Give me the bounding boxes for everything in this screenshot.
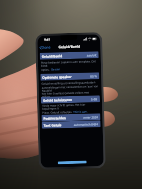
staticText: Pieve bedienen zoeken is een template. D… bbox=[41, 59, 98, 68]
staticText: De tien bbox=[51, 67, 61, 72]
staticText: Podsinstelden bbox=[43, 116, 66, 121]
staticText: aan/uit bbox=[87, 53, 97, 58]
button[interactable]: Geluid/Beeld bbox=[40, 51, 99, 60]
button[interactable]: Geluid beluisteren bbox=[41, 95, 100, 104]
staticText: opties. bbox=[41, 68, 50, 72]
button[interactable]: Podsinstelden bbox=[41, 113, 101, 122]
button[interactable]: Optionele speaker bbox=[40, 72, 99, 81]
staticText: meer 2024 bbox=[83, 115, 98, 120]
staticText: Tant Geluis bbox=[44, 123, 62, 128]
staticText: Geluid en stilling uit verstellingsaandu… bbox=[41, 80, 96, 86]
staticText: Pieve. Geluidt cofeetjes. bbox=[42, 110, 72, 115]
staticText: Geluid/Beeld bbox=[58, 44, 80, 49]
staticText: automatisch 8434 bbox=[74, 122, 99, 127]
staticText: Optionele speaker bbox=[42, 75, 72, 80]
staticText: 9:41 bbox=[44, 37, 50, 42]
staticText: Thie is aan. bbox=[73, 109, 88, 114]
staticText: Done bbox=[41, 44, 51, 50]
button[interactable]: Done bbox=[39, 44, 51, 50]
button[interactable]: Tant Geluis bbox=[42, 120, 101, 129]
staticText: Vinde maar schrift opties. Het hier bepa… bbox=[42, 102, 99, 111]
staticText: Geluid/Beeld bbox=[42, 54, 63, 59]
staticText: 80 % bbox=[90, 74, 97, 78]
staticText: aanmeldingen met verstellerken en 'aan' … bbox=[42, 84, 99, 99]
staticText: 5 dB bbox=[91, 97, 98, 101]
staticText: Geluid beluisteren bbox=[43, 98, 73, 103]
